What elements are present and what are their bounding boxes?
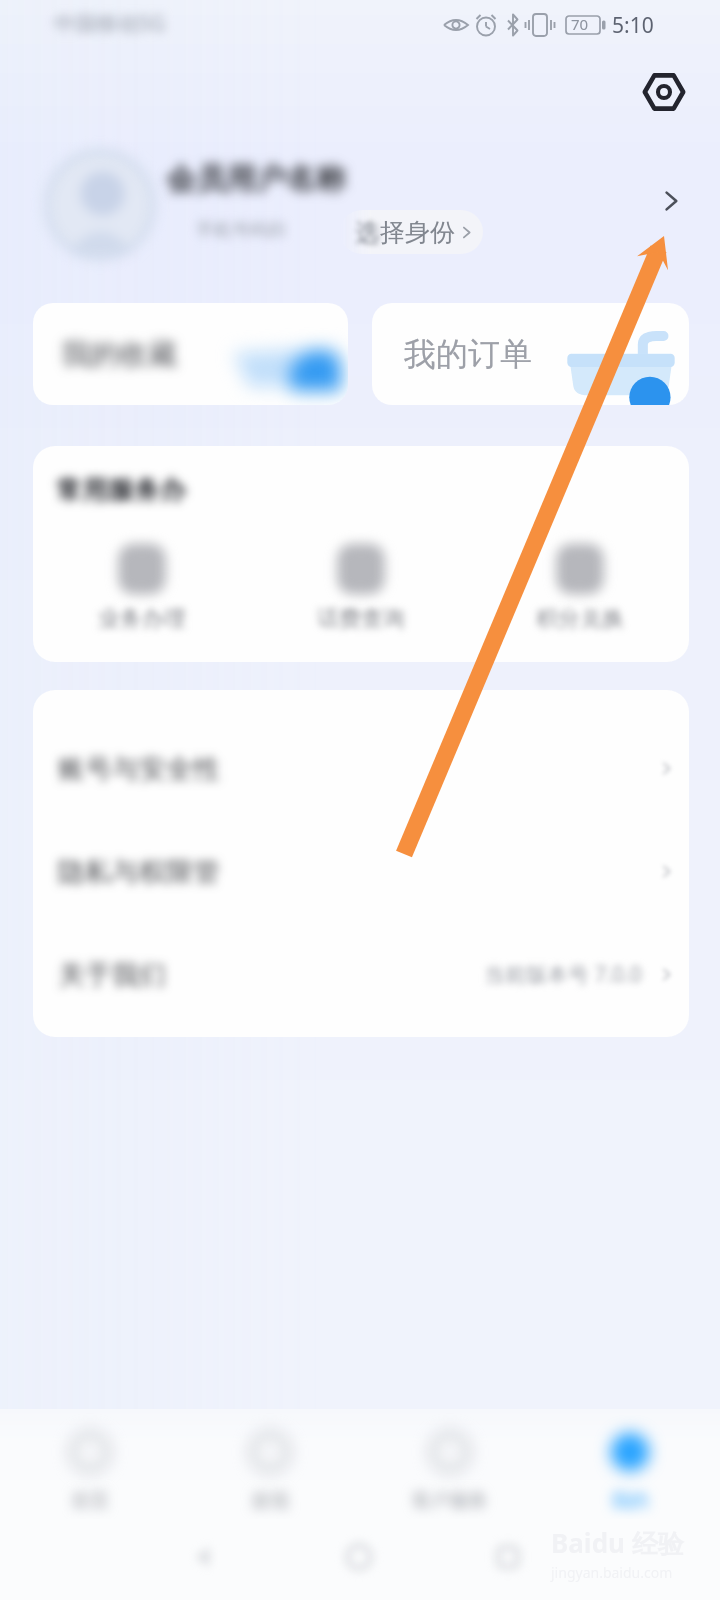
staticText: 客户服务 (412, 1489, 488, 1513)
staticText: 关于我们 (58, 958, 166, 992)
staticText: 当前版本号 7.0.0 (484, 960, 642, 989)
staticText: 账号与安全性 (58, 752, 220, 786)
button[interactable]: 业务办理 (33, 534, 251, 633)
staticText: 话费查询 (317, 605, 405, 633)
staticText: 业务办理 (98, 605, 186, 633)
button[interactable]: Recents (486, 1535, 530, 1579)
staticText: 选 (355, 217, 380, 248)
button[interactable]: 话费查询 (251, 534, 470, 633)
button[interactable]: 我的订单 (372, 303, 689, 405)
button[interactable]: 我的 (540, 1409, 720, 1519)
staticText: 我的收藏 (61, 336, 177, 373)
button[interactable]: 账号与安全性 (33, 717, 689, 820)
staticText: Baidu 经验 (551, 1525, 684, 1561)
staticText: 70 (571, 14, 589, 34)
button[interactable]: 发现 (180, 1409, 360, 1519)
staticText: 5:10 (612, 11, 654, 40)
staticText: 积分兑换 (536, 605, 624, 633)
staticText: 会员用户名称 (166, 160, 346, 198)
button[interactable]: 我的收藏 (33, 303, 348, 405)
staticText: 我的订单 (404, 334, 532, 374)
button[interactable]: Settings (634, 62, 694, 122)
button[interactable]: 选 (340, 210, 483, 254)
staticText: 择身份 (380, 217, 455, 248)
staticText: 我的 (611, 1489, 649, 1513)
staticText: jingyan.baidu.com (551, 1563, 673, 1582)
staticText: 常用服务办 (56, 474, 186, 507)
staticText: 中国移动5G (54, 9, 166, 38)
button[interactable]: 积分兑换 (470, 534, 689, 633)
button[interactable]: Home (337, 1535, 381, 1579)
button[interactable]: 会员用户名称 (0, 130, 720, 280)
staticText: 手机号码归 (196, 219, 286, 242)
button[interactable]: 首页 (0, 1409, 180, 1519)
staticText: 首页 (71, 1489, 109, 1513)
button[interactable]: Back (182, 1535, 226, 1579)
staticText: 隐私与权限管 (58, 855, 220, 889)
button[interactable]: 关于我们 (33, 923, 689, 1026)
staticText: 发现 (251, 1489, 289, 1513)
button[interactable]: 客户服务 (360, 1409, 540, 1519)
button[interactable]: 隐私与权限管 (33, 820, 689, 923)
